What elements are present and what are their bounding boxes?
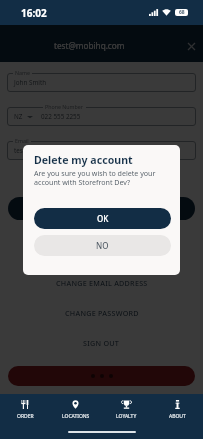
button[interactable]: LOYALTY	[101, 400, 152, 428]
button[interactable]: ORDER	[0, 400, 50, 428]
button[interactable]: CHANGE PASSWORD	[0, 308, 203, 318]
staticText: CHANGE PASSWORD	[65, 308, 139, 318]
button[interactable]: SIGN OUT	[0, 338, 203, 348]
staticText: Are you sure you wish to delete your acc…	[34, 168, 156, 187]
staticText: 68	[179, 9, 185, 16]
staticText: ABOUT	[169, 413, 186, 420]
staticText: ORDER	[17, 413, 34, 420]
button[interactable]: CHANGE EMAIL ADDRESS	[0, 278, 203, 288]
button[interactable]: Delete account	[8, 366, 195, 386]
staticText: OK	[97, 213, 109, 224]
button[interactable]: OK	[34, 208, 171, 229]
staticText: Phone Number	[45, 103, 84, 110]
staticText: Name	[15, 69, 30, 76]
staticText: John Smith	[14, 78, 47, 87]
button[interactable]: Close	[184, 39, 198, 53]
staticText: LOCATIONS	[62, 413, 90, 420]
staticText: 16:02	[21, 6, 47, 20]
staticText: SAVE	[91, 203, 113, 215]
staticText: Delete my account	[34, 153, 133, 167]
button[interactable]: SAVE	[8, 197, 195, 220]
staticText: LOYALTY	[116, 413, 137, 420]
button[interactable]: NO	[34, 235, 171, 256]
staticText: 022 555 2255	[41, 112, 81, 121]
staticText: SIGN OUT	[83, 338, 120, 348]
staticText: test@mobihq.com	[14, 146, 69, 155]
staticText: CHANGE EMAIL ADDRESS	[56, 278, 148, 288]
staticText: NZ	[14, 112, 23, 121]
button[interactable]: ABOUT	[152, 400, 203, 428]
staticText: Email	[15, 137, 29, 144]
staticText: test@mobihq.com	[54, 40, 125, 51]
button[interactable]: LOCATIONS	[50, 400, 101, 428]
staticText: NO	[96, 240, 109, 251]
